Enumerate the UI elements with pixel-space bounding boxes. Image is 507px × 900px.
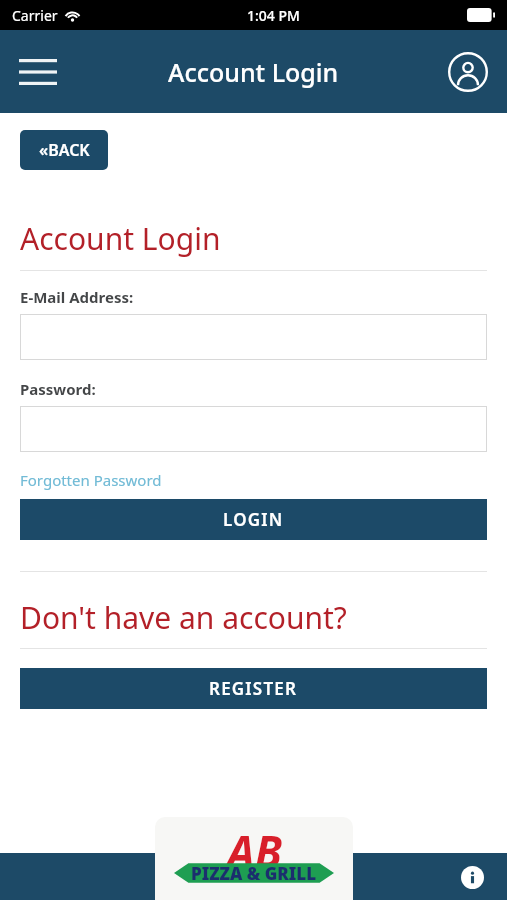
button[interactable]: Menu	[14, 48, 62, 96]
button[interactable]: LOGIN	[20, 499, 487, 540]
staticText: E-Mail Address:	[20, 287, 134, 307]
button[interactable]: Account	[445, 49, 491, 95]
staticText: REGISTER	[209, 677, 298, 700]
staticText: Account Login	[20, 218, 221, 259]
staticText: «BACK	[39, 139, 90, 161]
button[interactable]: Text field	[20, 406, 487, 452]
staticText: PIZZA & GRILL	[191, 862, 317, 884]
staticText: LOGIN	[223, 508, 284, 531]
button[interactable]: Forgotten Password	[20, 470, 162, 490]
staticText: Don't have an account?	[20, 597, 347, 638]
staticText: AB	[227, 821, 282, 881]
button[interactable]: REGISTER	[20, 668, 487, 709]
staticText: Password:	[20, 379, 96, 399]
staticText: Carrier	[12, 6, 58, 25]
button[interactable]: Info	[455, 860, 489, 894]
staticText: Forgotten Password	[20, 470, 162, 490]
staticText: 1:04 PM	[247, 6, 300, 25]
button[interactable]: Text field	[20, 314, 487, 360]
button[interactable]: «BACK	[20, 130, 108, 170]
staticText: Account Login	[168, 55, 339, 89]
button[interactable]: AB Pizza & Grill home	[155, 817, 353, 900]
